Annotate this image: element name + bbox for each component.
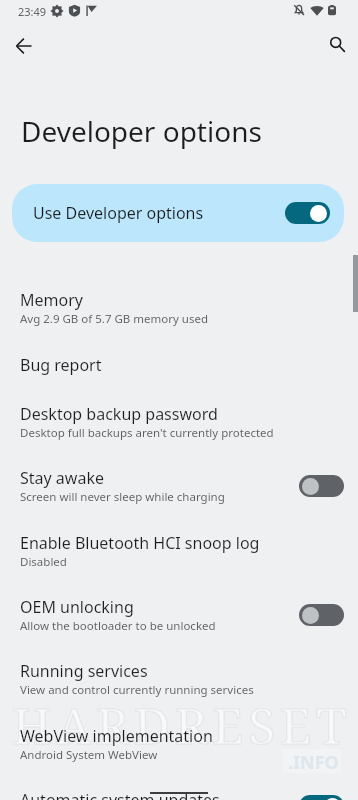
button[interactable]: Toggle on [299, 795, 344, 800]
staticText: Running services [20, 660, 148, 682]
staticText: Bug report [20, 354, 102, 376]
staticText: HARDRESET [12, 691, 352, 759]
button[interactable]: Stay awake [0, 467, 358, 531]
button[interactable]: Desktop backup password [0, 403, 358, 467]
button[interactable]: Back [5, 27, 43, 65]
staticText: .INFO [288, 750, 339, 775]
button[interactable]: Automatic system updates [0, 789, 358, 800]
staticText: Use Developer options [33, 202, 285, 224]
button[interactable]: Running services [0, 660, 358, 724]
button[interactable]: Bug report [0, 354, 358, 402]
staticText: Desktop full backups aren't currently pr… [20, 425, 274, 441]
staticText: HARDRESET [12, 691, 352, 759]
staticText: Allow the bootloader to be unlocked [20, 618, 216, 634]
staticText: Android System WebView [20, 747, 158, 763]
button[interactable]: Memory [0, 289, 358, 353]
staticText: Screen will never sleep while charging [20, 489, 225, 505]
staticText: Developer options [21, 112, 262, 150]
staticText: 23:49 [18, 4, 47, 19]
button[interactable]: Toggle off [299, 475, 344, 497]
button[interactable]: OEM unlocking [0, 596, 358, 660]
button[interactable]: WebView implementation [0, 725, 358, 789]
staticText: Memory [20, 289, 83, 311]
staticText: Automatic system updates [20, 789, 220, 800]
button[interactable]: Toggle off [299, 604, 344, 626]
staticText: Stay awake [20, 467, 104, 489]
button[interactable]: Enable Bluetooth HCI snoop log [0, 532, 358, 596]
staticText: WebView implementation [20, 725, 213, 747]
staticText: Disabled [20, 554, 67, 570]
staticText: Desktop backup password [20, 403, 218, 425]
button[interactable]: Toggle on [285, 202, 330, 224]
button[interactable]: Use Developer options [12, 184, 344, 242]
staticText: Enable Bluetooth HCI snoop log [20, 532, 260, 554]
staticText: View and control currently running servi… [20, 682, 254, 698]
staticText: Avg 2.9 GB of 5.7 GB memory used [20, 311, 209, 327]
button[interactable]: Search [318, 25, 356, 63]
staticText: OEM unlocking [20, 596, 134, 618]
